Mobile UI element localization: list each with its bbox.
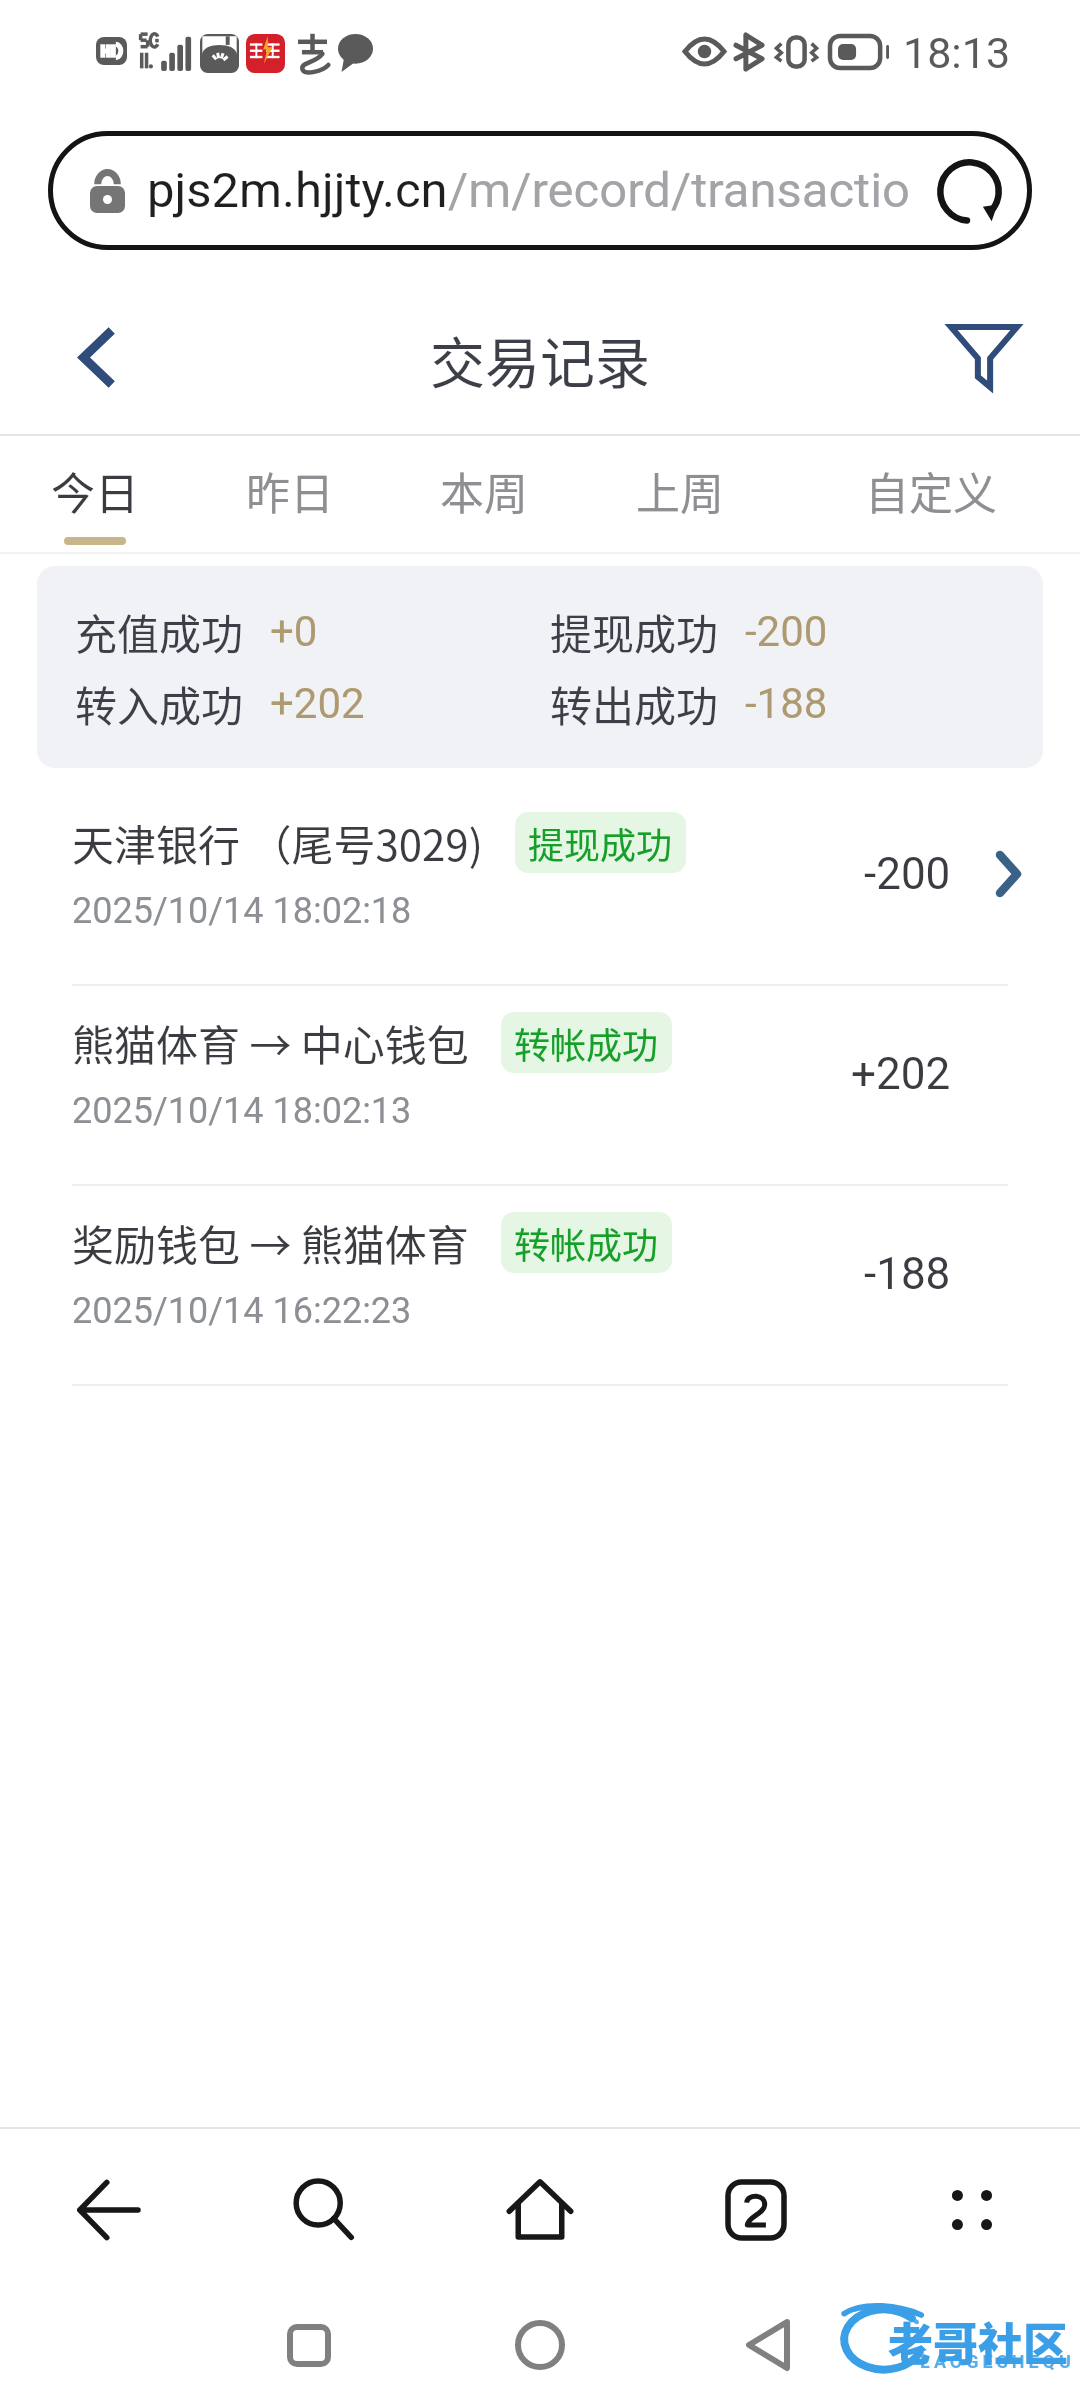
staticText: 转帐成功 — [514, 1217, 659, 1269]
staticText: +202 — [270, 679, 365, 728]
button[interactable]: More — [864, 2129, 1080, 2290]
staticText: -188 — [745, 679, 828, 728]
button[interactable]: Search — [216, 2129, 432, 2290]
staticText: 充值成功 — [75, 601, 244, 662]
button[interactable]: Recents — [249, 2290, 369, 2400]
button[interactable]: Back — [44, 293, 148, 421]
staticText: 昨日 — [246, 459, 334, 523]
button[interactable]: Filter — [916, 287, 1052, 427]
staticText: 2025/10/14 18:02:18 — [72, 890, 412, 932]
staticText: /m/record/transactio — [448, 162, 911, 219]
button[interactable]: 熊猫体育 → 中心钱包 — [0, 986, 1080, 1186]
staticText: 2025/10/14 16:22:23 — [72, 1290, 412, 1332]
staticText: 奖励钱包 → 熊猫体育 — [72, 1212, 469, 1273]
staticText: -200 — [864, 848, 951, 900]
staticText: 本周 — [440, 459, 528, 523]
button[interactable]: pjs2m.hjjty.cn — [48, 131, 1032, 250]
staticText: pjs2m.hjjty.cn — [147, 162, 448, 219]
staticText: -188 — [864, 1248, 951, 1300]
staticText: 熊猫体育 → 中心钱包 — [72, 1012, 469, 1073]
staticText: +202 — [851, 1048, 951, 1100]
button[interactable]: Reload — [926, 148, 1012, 234]
staticText: +0 — [270, 607, 318, 656]
button[interactable]: Home — [480, 2290, 600, 2400]
staticText: 2025/10/14 18:02:13 — [72, 1090, 412, 1132]
staticText: 提现成功 — [528, 817, 673, 869]
button[interactable]: 自定义 — [853, 436, 1009, 554]
staticText: 老哥社区 — [888, 2309, 1069, 2374]
staticText: 转帐成功 — [514, 1017, 659, 1069]
button[interactable]: 上周 — [624, 436, 736, 554]
button[interactable]: Tabs — [648, 2129, 864, 2290]
button[interactable]: 天津银行 （尾号3029) — [0, 786, 1080, 986]
staticText: 天津银行 （尾号3029) — [72, 812, 483, 873]
staticText: 转出成功 — [550, 673, 719, 734]
staticText: 交易记录 — [430, 319, 651, 399]
staticText: 今日 — [51, 459, 139, 523]
button[interactable]: 今日 — [39, 436, 151, 554]
staticText: 提现成功 — [550, 601, 719, 662]
staticText: 上周 — [636, 459, 724, 523]
button[interactable]: 奖励钱包 → 熊猫体育 — [0, 1186, 1080, 1386]
button[interactable]: Back — [0, 2129, 216, 2290]
staticText: 转入成功 — [75, 673, 244, 734]
staticText: 自定义 — [865, 459, 997, 523]
button[interactable]: Home — [432, 2129, 648, 2290]
button[interactable]: 本周 — [428, 436, 540, 554]
button[interactable]: 昨日 — [234, 436, 346, 554]
staticText: LAOGESHEQU — [920, 2351, 1075, 2372]
staticText: 18:13 — [903, 28, 1011, 78]
button[interactable]: Back — [708, 2290, 828, 2400]
staticText: -200 — [745, 607, 828, 656]
